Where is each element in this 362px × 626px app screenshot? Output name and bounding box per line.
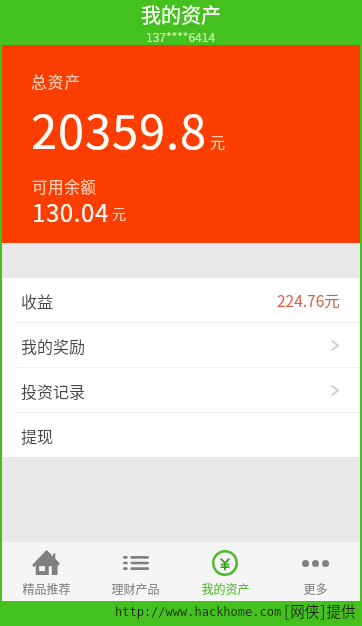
staticText: 理财产品 <box>111 580 160 596</box>
button[interactable]: 我的奖励 <box>2 323 360 367</box>
button[interactable]: Featured <box>2 542 91 601</box>
button[interactable]: 收益 <box>2 278 360 322</box>
staticText: http://www.hackhome.com <box>115 605 282 619</box>
staticText: 我的奖励 <box>21 334 86 357</box>
button[interactable]: Products <box>91 542 180 601</box>
staticText: 更多 <box>303 580 328 596</box>
staticText: 137****6414 <box>146 28 216 45</box>
staticText: 224.76元 <box>277 289 340 311</box>
staticText: 收益 <box>21 289 54 312</box>
staticText: 可用余额 <box>32 175 97 197</box>
staticText: 20359.8 <box>31 94 207 162</box>
button[interactable]: 提现 <box>2 413 360 457</box>
button[interactable]: 投资记录 <box>2 368 360 412</box>
staticText: 精品推荐 <box>22 580 71 596</box>
staticText: 我的资产 <box>201 580 250 596</box>
staticText: 元 <box>210 131 226 153</box>
staticText: 元 <box>112 203 126 223</box>
staticText: 我的资产 <box>141 0 221 26</box>
staticText: 投资记录 <box>21 379 86 402</box>
staticText: 总资产 <box>31 70 82 92</box>
button[interactable]: My assets <box>180 542 270 601</box>
staticText: 130.04 <box>32 194 109 229</box>
button[interactable]: More <box>270 542 360 601</box>
staticText: [网侠]提供 <box>283 600 356 621</box>
staticText: 提现 <box>21 424 54 447</box>
